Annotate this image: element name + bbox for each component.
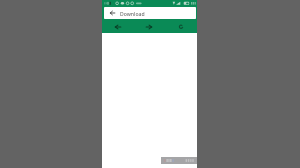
staticText: Download bbox=[120, 11, 145, 18]
button[interactable]: Forward bbox=[133, 20, 165, 33]
button[interactable]: Back bbox=[104, 7, 196, 19]
other: Back bbox=[110, 11, 115, 15]
button[interactable]: Refresh bbox=[165, 20, 197, 33]
button[interactable]: Back bbox=[102, 20, 133, 33]
